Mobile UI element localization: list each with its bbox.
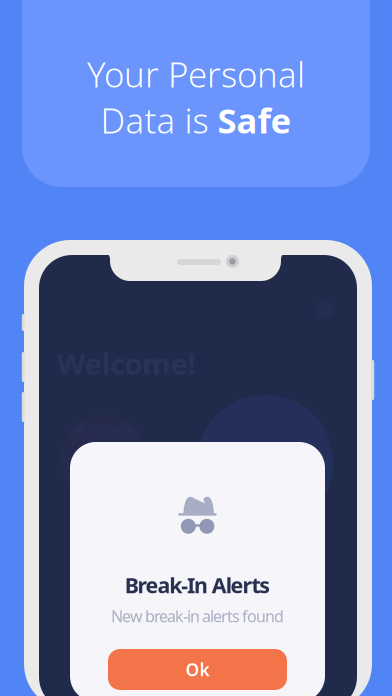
staticText: Data is Safe	[100, 97, 291, 143]
staticText: New break-in alerts found	[111, 605, 284, 627]
staticText: Welcome!	[57, 344, 196, 383]
staticText: Your Personal	[87, 51, 305, 97]
staticText: Break-In Alerts	[125, 571, 270, 599]
staticText: Ok	[185, 658, 209, 681]
button[interactable]: Ok	[108, 649, 287, 690]
